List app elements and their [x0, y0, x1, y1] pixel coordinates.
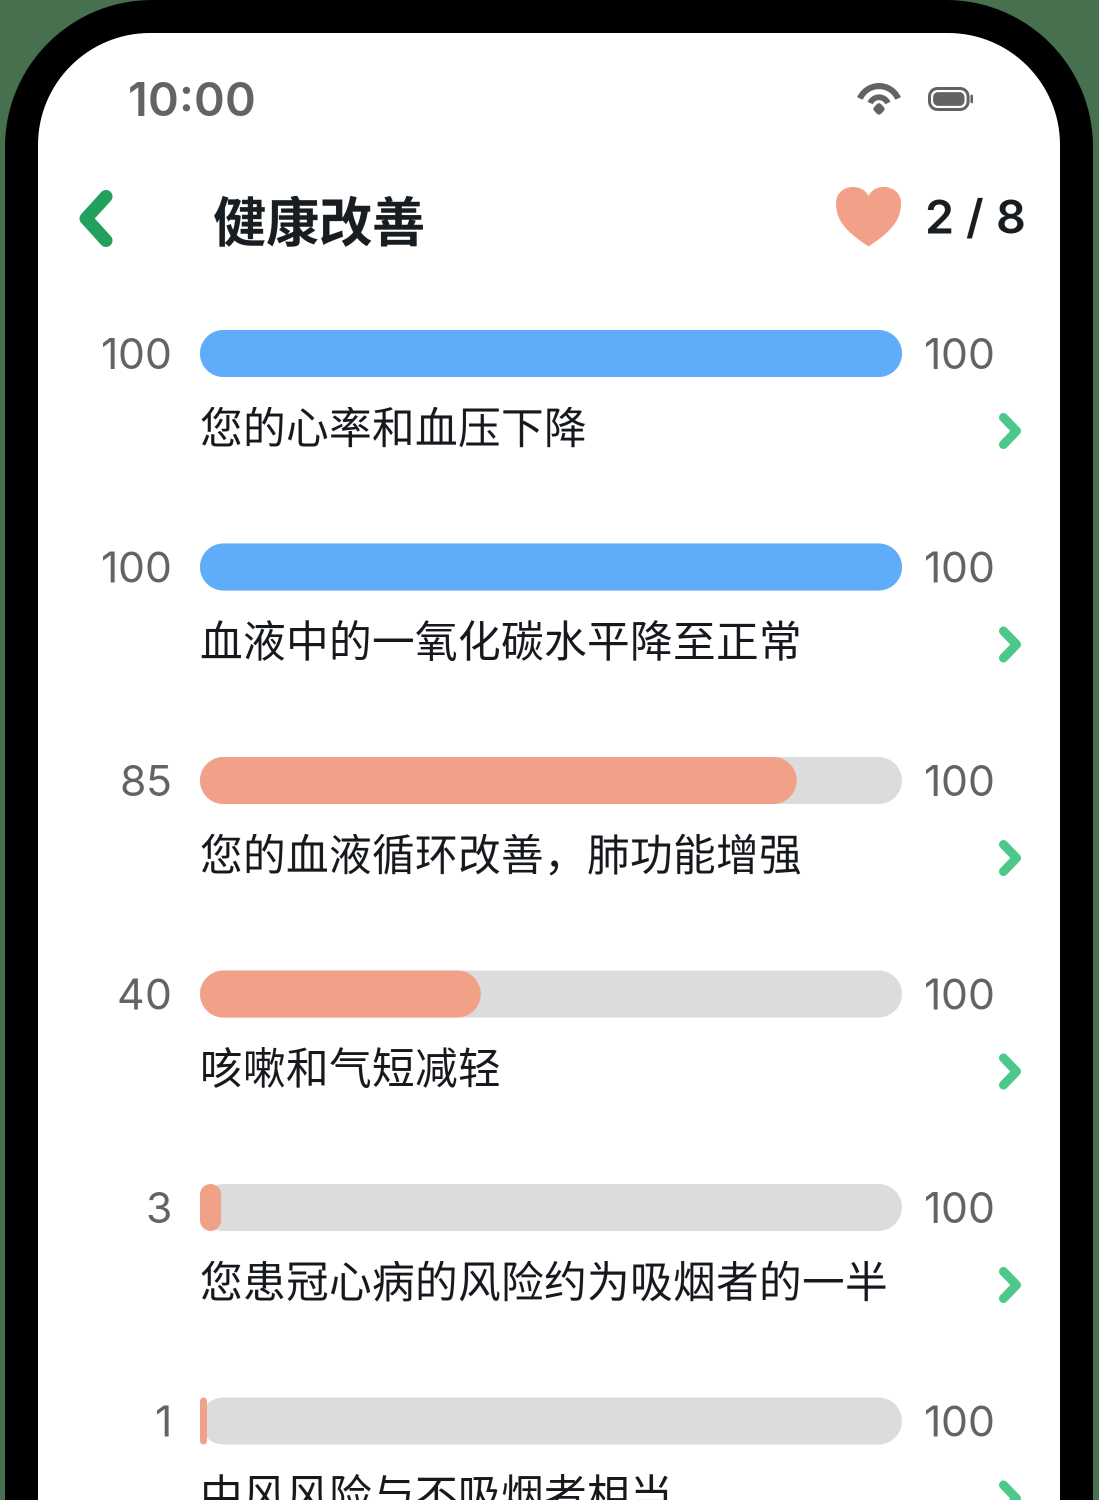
button[interactable]: 3: [38, 1184, 1060, 1307]
staticText: 100: [924, 328, 995, 379]
staticText: 40: [117, 968, 172, 1020]
staticText: 血液中的一氧化碳水平降至正常: [200, 608, 802, 669]
button[interactable]: 100: [38, 543, 1060, 666]
staticText: 100: [924, 968, 995, 1020]
staticText: 中风风险与不吸烟者相当: [200, 1462, 673, 1500]
staticText: 2 / 8: [925, 188, 1026, 245]
staticText: 1: [155, 1395, 172, 1447]
staticText: 100: [924, 1182, 995, 1233]
button[interactable]: 85: [38, 757, 1060, 880]
button[interactable]: 1: [38, 1397, 1060, 1500]
button[interactable]: 100: [38, 330, 1060, 453]
button[interactable]: 40: [38, 970, 1060, 1093]
staticText: 100: [924, 541, 995, 593]
staticText: 10:00: [128, 71, 256, 127]
staticText: 100: [924, 1395, 995, 1447]
staticText: 100: [101, 541, 172, 593]
button[interactable]: Back: [51, 171, 141, 265]
staticText: 咳嗽和气短减轻: [200, 1035, 501, 1096]
staticText: 3: [146, 1182, 172, 1233]
staticText: 85: [120, 755, 172, 806]
staticText: 您患冠心病的风险约为吸烟者的一半: [200, 1248, 888, 1310]
staticText: 100: [101, 328, 172, 379]
button[interactable]: 2 / 8: [836, 187, 1026, 249]
staticText: 100: [924, 755, 995, 806]
staticText: 健康改善: [213, 180, 425, 257]
staticText: 您的心率和血压下降: [200, 394, 587, 456]
staticText: 您的血液循环改善，肺功能增强: [200, 821, 802, 883]
